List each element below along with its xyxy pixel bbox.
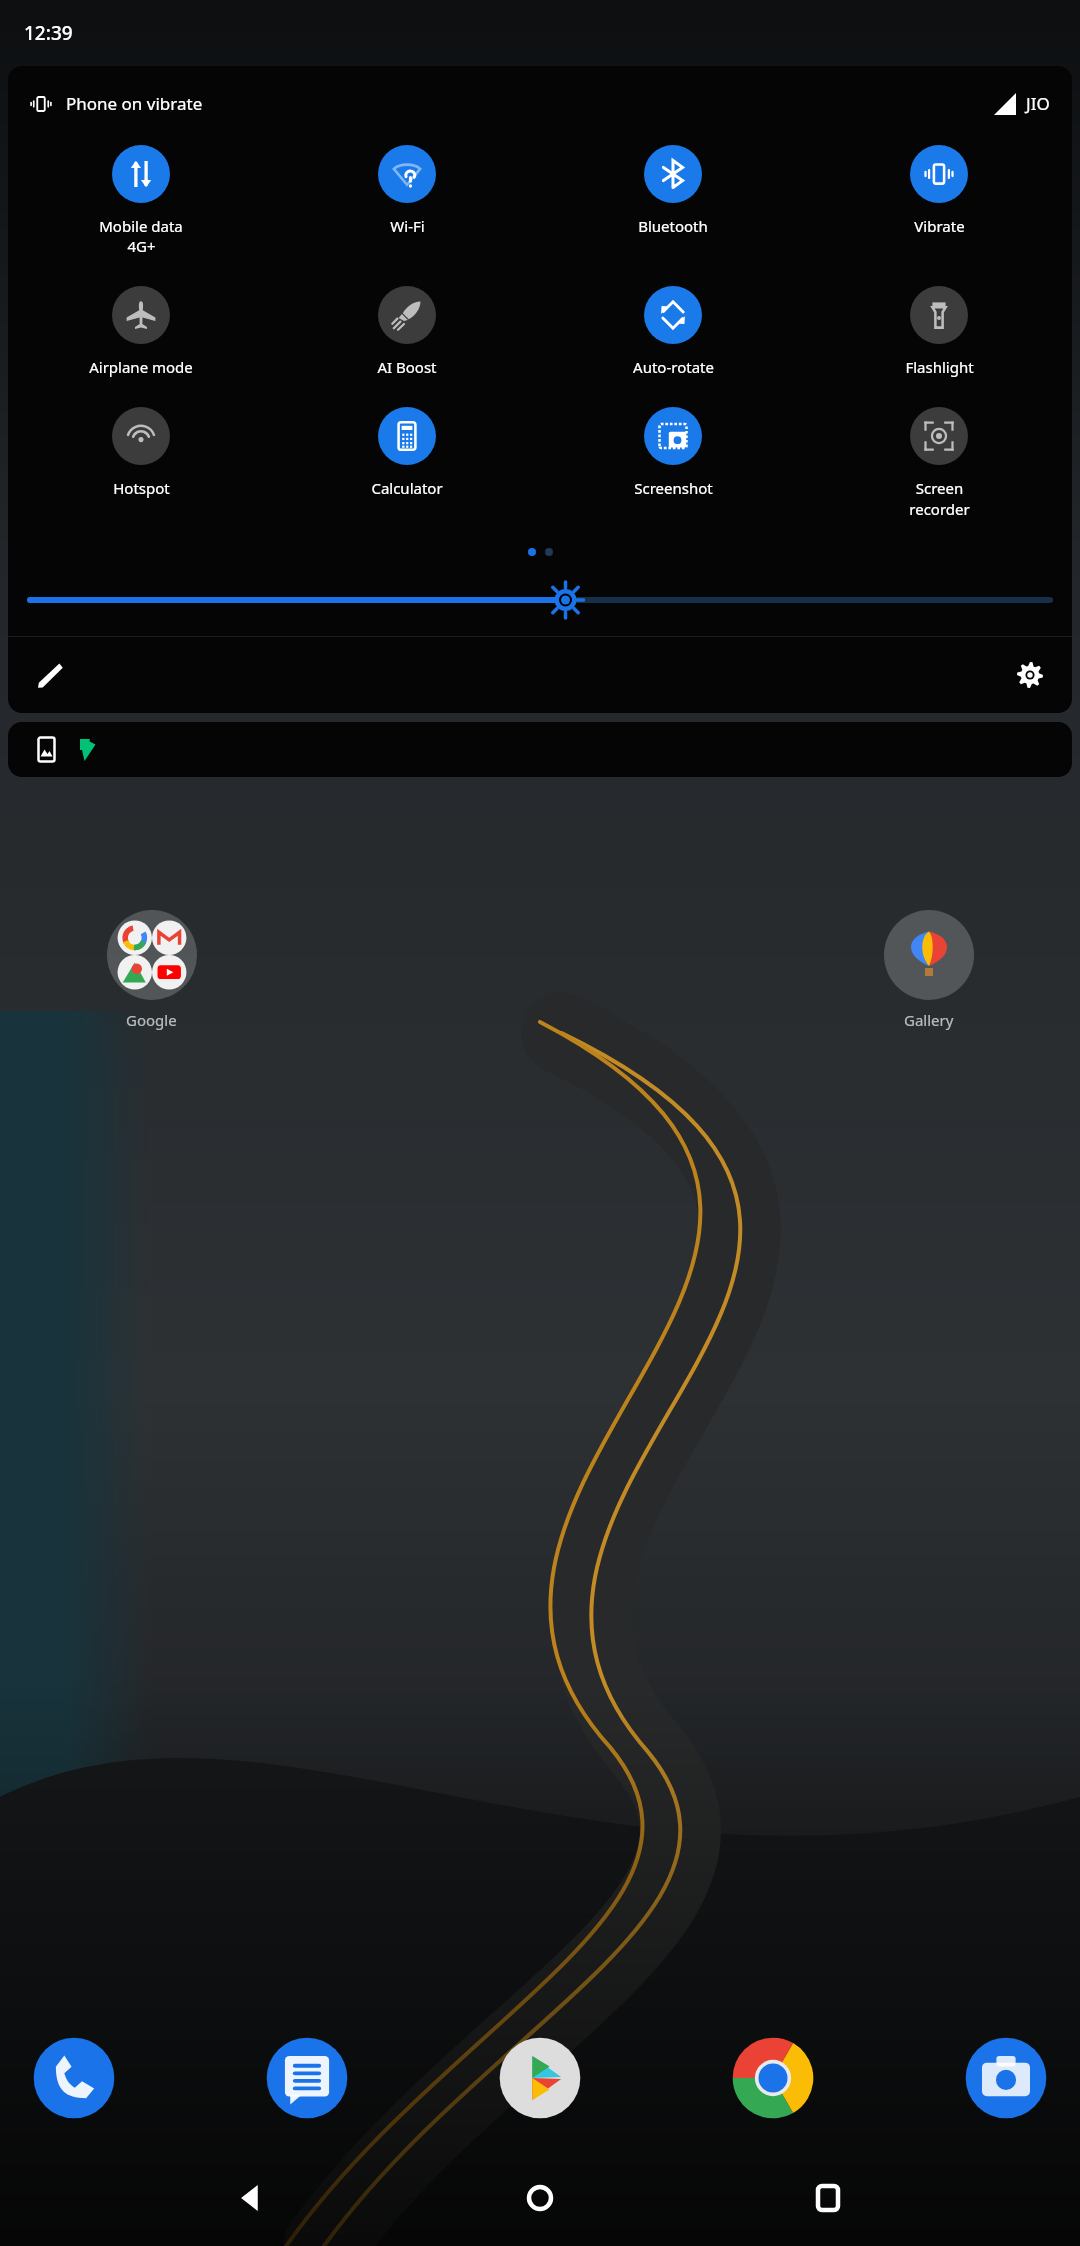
button[interactable]: [8, 722, 1072, 777]
button[interactable]: Bluetooth: [540, 141, 806, 240]
staticText: Wi-Fi: [390, 216, 425, 236]
staticText: JIO: [1026, 92, 1050, 115]
staticText: Hotspot: [113, 478, 170, 498]
button[interactable]: Vibrate: [806, 141, 1072, 240]
button[interactable]: Google: [30, 910, 273, 1030]
button[interactable]: Airplane mode: [8, 282, 274, 381]
staticText: Gallery: [904, 1010, 954, 1030]
button[interactable]: Edit: [24, 649, 76, 701]
button[interactable]: Gallery: [807, 910, 1050, 1030]
staticText: Screenshot: [634, 478, 713, 498]
staticText: Screen recorder: [909, 478, 970, 520]
button[interactable]: Back: [216, 2162, 288, 2234]
button[interactable]: Screen recorder: [806, 403, 1072, 524]
button[interactable]: Hotspot: [8, 403, 274, 502]
staticText: 12:39: [24, 20, 73, 46]
staticText: Bluetooth: [638, 216, 708, 236]
staticText: Phone on vibrate: [66, 92, 203, 115]
staticText: Mobile data: [99, 216, 183, 236]
button[interactable]: Calculator: [274, 403, 540, 502]
button[interactable]: Flashlight: [806, 282, 1072, 381]
button[interactable]: Wi-Fi: [274, 141, 540, 240]
button[interactable]: AI Boost: [274, 282, 540, 381]
button[interactable]: Screenshot: [540, 403, 806, 502]
button[interactable]: Mobile data: [8, 141, 274, 260]
staticText: AI Boost: [377, 357, 437, 377]
staticText: Calculator: [371, 478, 443, 498]
staticText: Google: [126, 1010, 177, 1030]
staticText: Auto-rotate: [633, 357, 714, 377]
staticText: 4G+: [127, 236, 156, 256]
staticText: Flashlight: [905, 357, 974, 377]
staticText: Vibrate: [914, 216, 965, 236]
button[interactable]: Recents: [792, 2162, 864, 2234]
button[interactable]: Messages: [259, 2030, 355, 2126]
button[interactable]: Chrome: [725, 2030, 821, 2126]
button[interactable]: Auto-rotate: [540, 282, 806, 381]
staticText: Airplane mode: [89, 357, 193, 377]
button[interactable]: Play Store: [492, 2030, 588, 2126]
button[interactable]: Home: [504, 2162, 576, 2234]
button[interactable]: Phone: [26, 2030, 122, 2126]
button[interactable]: Settings: [1004, 649, 1056, 701]
button[interactable]: Camera: [958, 2030, 1054, 2126]
button[interactable]: Brightness: [30, 580, 1050, 620]
